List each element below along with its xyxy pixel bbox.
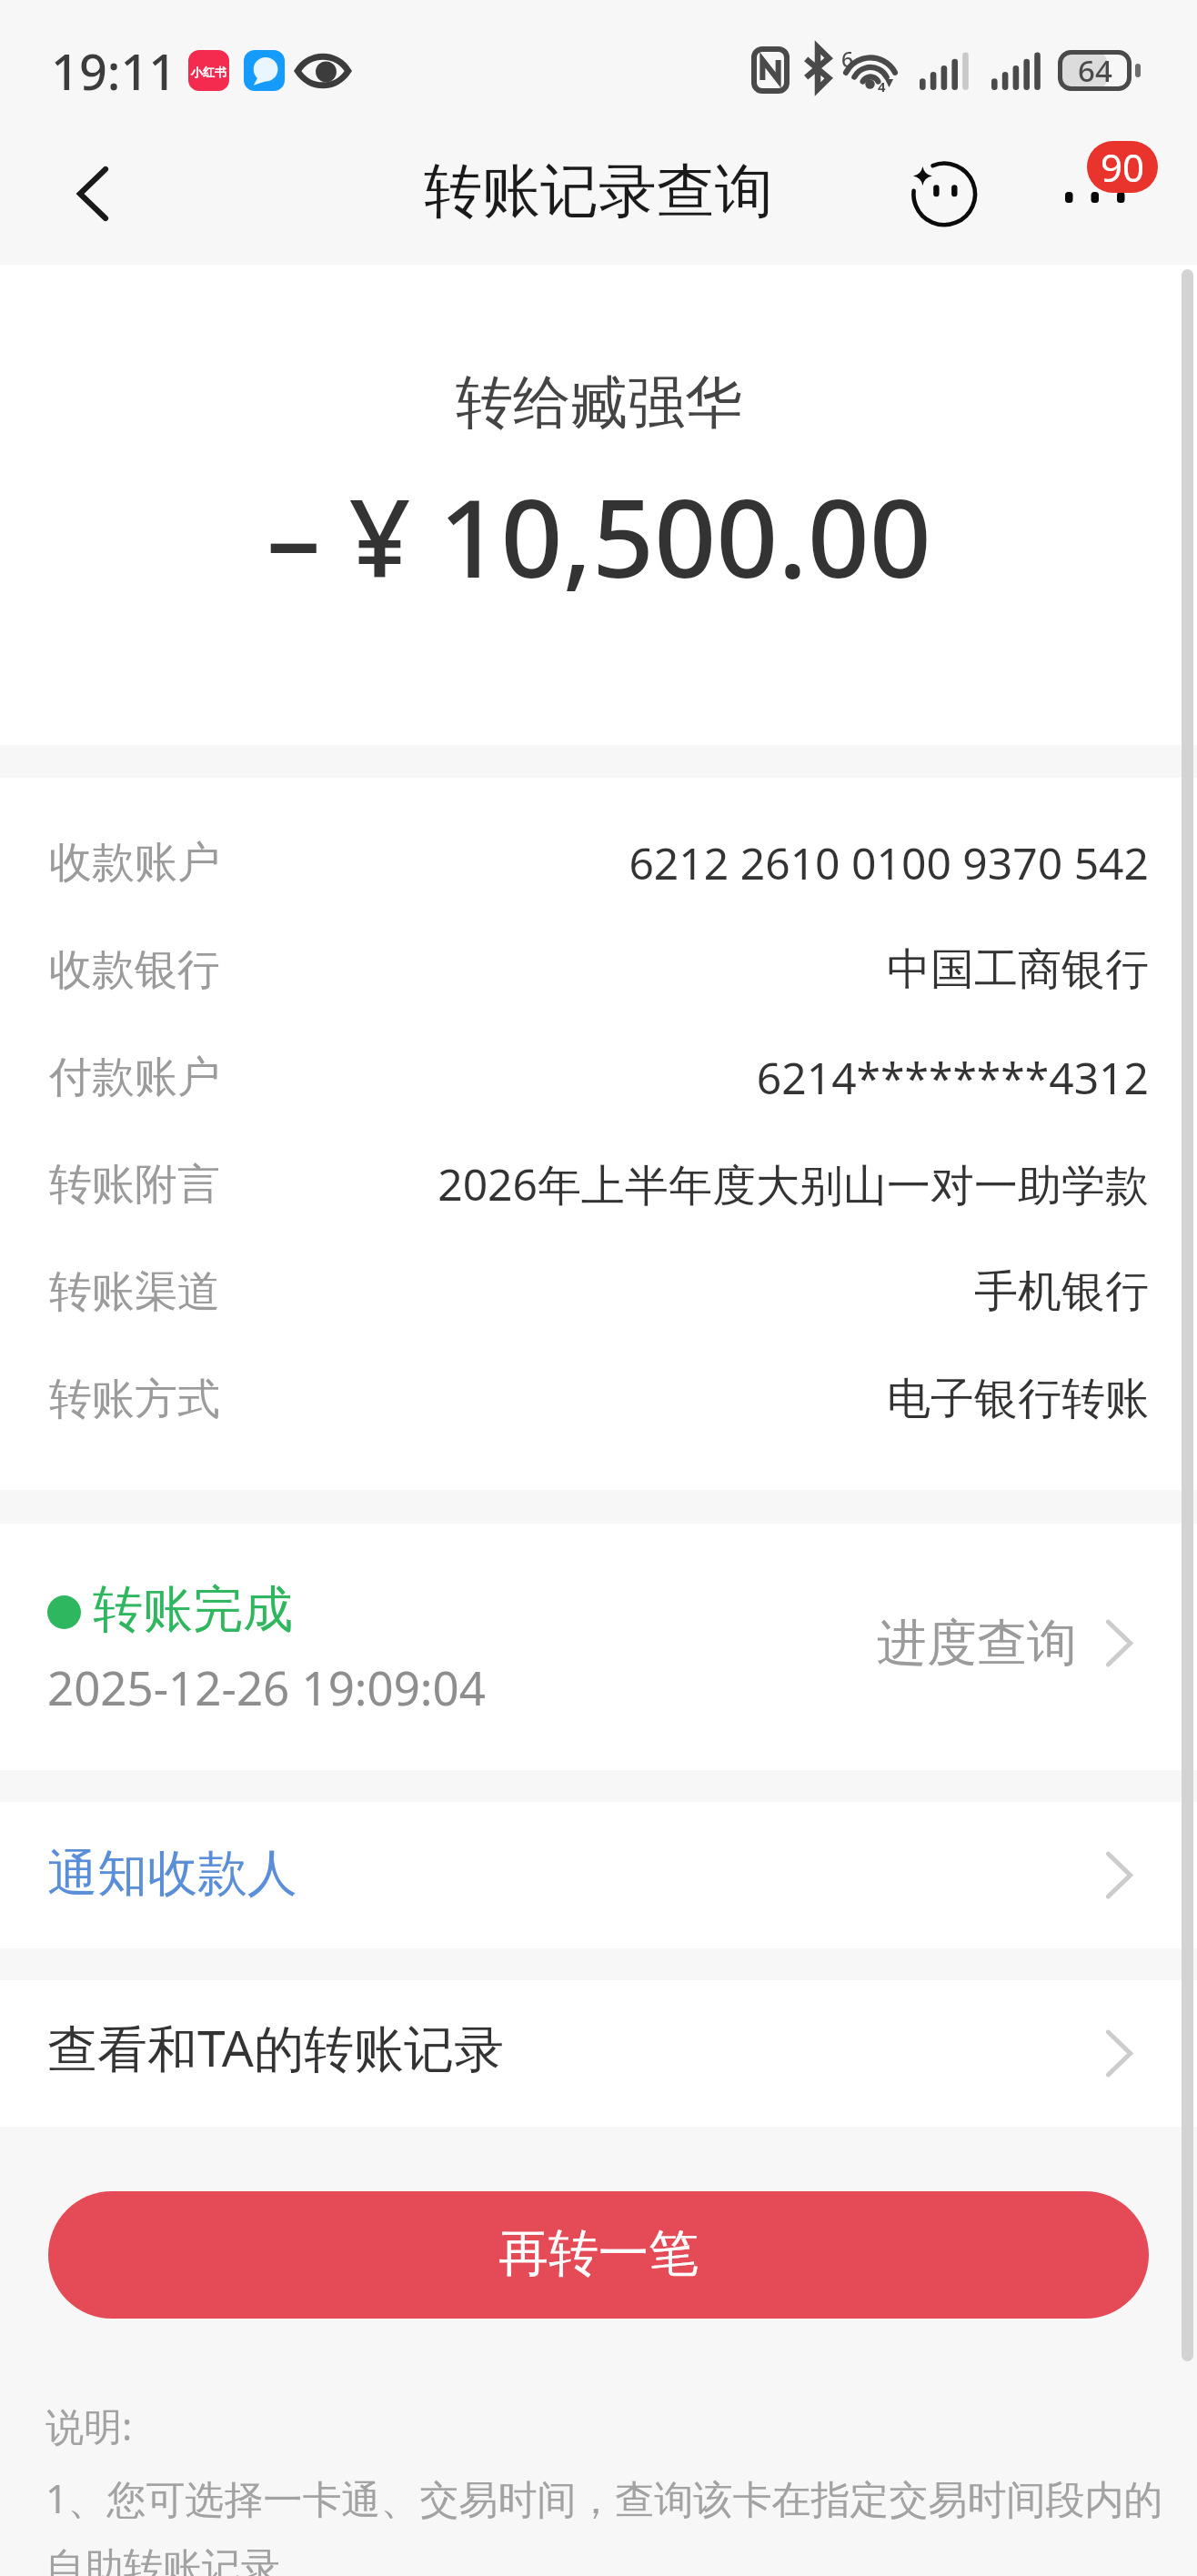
- staticText: 2026年上半年度大别山一对一助学款: [438, 1154, 1149, 1214]
- staticText: 转账记录查询: [424, 155, 773, 228]
- staticText: 小红书: [191, 65, 226, 79]
- button[interactable]: 进度查询: [877, 1612, 1132, 1675]
- staticText: 查看和TA的转账记录: [47, 2013, 504, 2081]
- staticText: 收款账户: [49, 836, 220, 890]
- staticText: 转账方式: [49, 1373, 220, 1426]
- staticText: 电子银行转账: [887, 1372, 1149, 1426]
- staticText: 付款账户: [49, 1051, 220, 1104]
- staticText: 1、您可选择一卡通、交易时间，查询该卡在指定交易时间段内的自助转账记录。: [45, 2471, 1186, 2576]
- staticText: 再转一笔: [498, 2222, 699, 2285]
- button[interactable]: 再转一笔: [48, 2191, 1149, 2319]
- staticText: 中国工商银行: [887, 942, 1149, 997]
- staticText: 手机银行: [974, 1264, 1149, 1319]
- button[interactable]: AI assistant: [887, 136, 1003, 252]
- staticText: 6212 2610 0100 9370 542: [629, 833, 1149, 892]
- staticText: 收款银行: [49, 943, 220, 997]
- staticText: 6214********4312: [756, 1048, 1149, 1107]
- staticText: 转给臧强华: [456, 367, 742, 438]
- staticText: 19:11: [51, 37, 177, 105]
- staticText: 6: [841, 45, 854, 73]
- staticText: 4: [878, 77, 886, 96]
- button[interactable]: More options: [1041, 132, 1174, 265]
- button[interactable]: Back: [0, 132, 146, 265]
- staticText: 转账渠道: [49, 1265, 220, 1319]
- staticText: – ¥ 10,500.00: [267, 462, 931, 609]
- button[interactable]: 通知收款人: [0, 1802, 1197, 1948]
- staticText: 64: [1078, 50, 1112, 91]
- button[interactable]: 查看和TA的转账记录: [0, 1980, 1197, 2127]
- staticText: 说明:: [45, 2400, 133, 2451]
- staticText: 进度查询: [877, 1612, 1077, 1675]
- staticText: 2025-12-26 19:09:04: [47, 1655, 486, 1718]
- staticText: 通知收款人: [47, 1842, 297, 1905]
- staticText: 转账完成: [93, 1578, 293, 1641]
- staticText: 90: [1101, 141, 1145, 193]
- staticText: 转账附言: [49, 1158, 220, 1212]
